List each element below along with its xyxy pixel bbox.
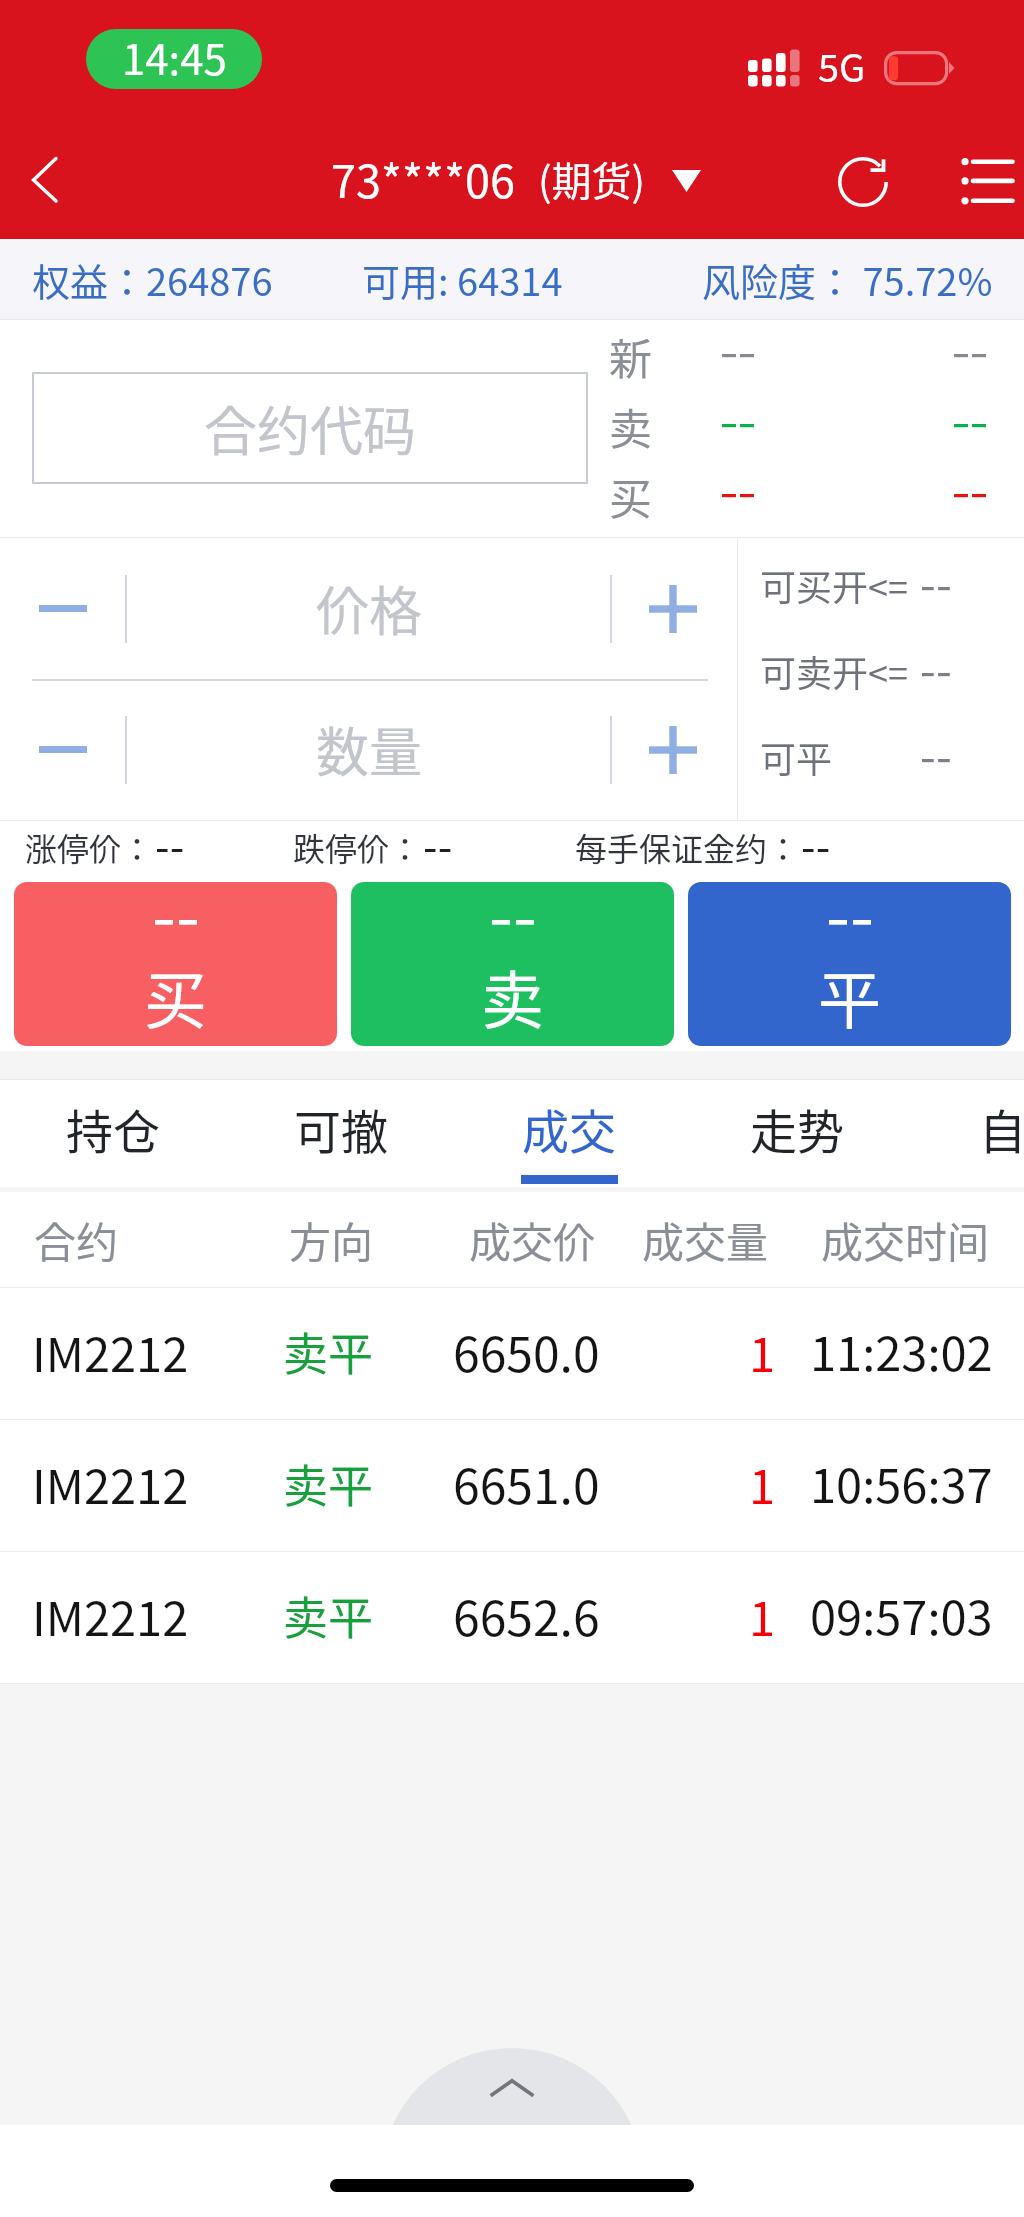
staticText: 权益：264876 bbox=[32, 252, 273, 307]
staticText: 成交量 bbox=[642, 1209, 769, 1270]
staticText: 73****06 bbox=[331, 146, 515, 211]
staticText: 走势 bbox=[750, 1094, 844, 1162]
button[interactable]: 自 bbox=[900, 1080, 1024, 1187]
staticText: 持仓 bbox=[66, 1094, 160, 1162]
staticText: 1 bbox=[749, 1449, 776, 1517]
staticText: 涨停价： bbox=[25, 824, 154, 870]
staticText: 卖平 bbox=[283, 1319, 374, 1384]
staticText: 卖 bbox=[481, 950, 544, 1041]
staticText: (期货) bbox=[538, 150, 646, 208]
staticText: 1 bbox=[749, 1581, 776, 1649]
staticText: 09:57:03 bbox=[810, 1580, 993, 1648]
button[interactable]: IM2212 bbox=[0, 1288, 1024, 1419]
button[interactable]: 成交 bbox=[467, 1080, 671, 1187]
button[interactable]: Back bbox=[0, 120, 96, 239]
button[interactable]: Increase 价格 bbox=[610, 538, 735, 679]
staticText: 卖平 bbox=[283, 1583, 374, 1648]
button[interactable]: 73****06 bbox=[300, 120, 724, 239]
staticText: 每手保证金约： bbox=[575, 824, 800, 870]
button[interactable]: 卖 bbox=[351, 882, 674, 1046]
staticText: 卖 bbox=[609, 395, 652, 453]
staticText: 可卖开<= bbox=[760, 645, 908, 697]
staticText: 10:56:37 bbox=[810, 1448, 993, 1516]
button[interactable]: 平 bbox=[688, 882, 1011, 1046]
staticText: 11:23:02 bbox=[810, 1316, 993, 1384]
staticText: 风险度： 75.72% bbox=[702, 252, 993, 307]
staticText: 可买开<= bbox=[760, 559, 908, 611]
staticText: 5G bbox=[818, 38, 866, 93]
button[interactable]: Decrease 价格 bbox=[0, 538, 126, 679]
staticText: IM2212 bbox=[32, 1581, 189, 1649]
staticText: 1 bbox=[749, 1317, 776, 1385]
staticText: 新 bbox=[609, 325, 652, 383]
button[interactable]: 买 bbox=[14, 882, 337, 1046]
button[interactable]: 走势 bbox=[695, 1080, 899, 1187]
button[interactable]: 数量 bbox=[127, 679, 610, 820]
staticText: 可撤 bbox=[294, 1094, 388, 1162]
staticText: 平 bbox=[818, 950, 881, 1041]
button[interactable]: Increase 数量 bbox=[610, 679, 735, 820]
staticText: 数量 bbox=[316, 711, 422, 788]
staticText: 6651.0 bbox=[453, 1448, 600, 1518]
staticText: 价格 bbox=[316, 570, 422, 647]
staticText: 自 bbox=[979, 1094, 1024, 1162]
button[interactable]: IM2212 bbox=[0, 1420, 1024, 1551]
button[interactable]: 持仓 bbox=[11, 1080, 215, 1187]
button[interactable]: Menu bbox=[920, 120, 1020, 239]
button[interactable]: Decrease 数量 bbox=[0, 679, 126, 820]
button[interactable]: 价格 bbox=[127, 538, 610, 679]
staticText: 跌停价： bbox=[293, 824, 422, 870]
staticText: 方向 bbox=[289, 1209, 374, 1270]
staticText: 买 bbox=[144, 950, 207, 1041]
button[interactable]: 可撤 bbox=[239, 1080, 443, 1187]
staticText: 成交 bbox=[522, 1094, 616, 1162]
staticText: 可平 bbox=[760, 731, 833, 783]
staticText: 合约 bbox=[34, 1209, 119, 1270]
staticText: 卖平 bbox=[283, 1451, 374, 1516]
staticText: 合约代码 bbox=[204, 390, 416, 467]
staticText: 6652.6 bbox=[453, 1580, 600, 1650]
staticText: IM2212 bbox=[32, 1449, 189, 1517]
staticText: 可用: 64314 bbox=[362, 252, 563, 307]
staticText: IM2212 bbox=[32, 1317, 189, 1385]
button[interactable]: IM2212 bbox=[0, 1552, 1024, 1683]
button[interactable]: 合约代码 bbox=[32, 372, 588, 484]
staticText: 成交时间 bbox=[821, 1209, 990, 1270]
button[interactable]: Refresh bbox=[815, 120, 911, 239]
staticText: 6650.0 bbox=[453, 1316, 600, 1386]
button[interactable]: Expand panel bbox=[392, 2048, 632, 2125]
staticText: 买 bbox=[609, 465, 652, 523]
staticText: 14:45 bbox=[122, 29, 227, 86]
staticText: 成交价 bbox=[469, 1209, 596, 1270]
